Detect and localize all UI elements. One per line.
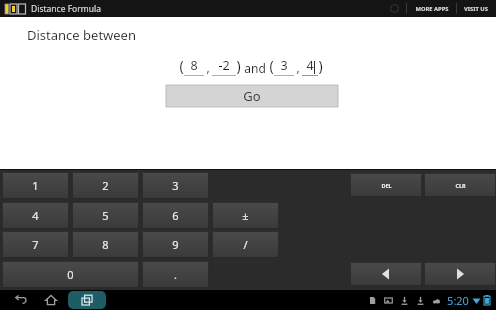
staticText: Distance Formula [31,3,101,15]
button[interactable]: 9 [142,231,209,258]
staticText: 8 [102,237,109,252]
button[interactable]: VISIT US [462,5,490,13]
staticText: Go [243,87,261,105]
staticText: DEL [381,182,392,189]
staticText: 7 [32,237,39,252]
button[interactable]: Go [166,85,338,107]
staticText: 5 [102,208,109,223]
button[interactable]: DEL [350,173,422,197]
staticText: 2 [102,178,109,193]
button[interactable]: 4 [2,202,69,229]
staticText: ) [318,56,323,75]
staticText: -2 [218,57,230,74]
button[interactable]: MORE APPS [413,5,451,13]
staticText: 4 [32,208,39,223]
button[interactable]: Recent apps [68,291,106,309]
staticText: 9 [172,237,179,252]
staticText: 0 [67,267,74,282]
button[interactable]: Previous field [350,262,422,286]
staticText: 6 [172,208,179,223]
button[interactable]: 1 [2,172,69,199]
button[interactable]: 8 [72,231,139,258]
staticText: , [296,59,300,75]
button[interactable]: 6 [142,202,209,229]
button[interactable]: / [212,231,279,258]
button[interactable]: 3 [142,172,209,199]
staticText: / [243,237,248,252]
staticText: 3 [172,178,179,193]
button[interactable]: 8 [184,57,204,76]
button[interactable]: ± [212,202,279,229]
staticText: and [244,60,266,76]
button[interactable]: . [142,261,209,288]
staticText: 4 [306,57,314,74]
staticText: Distance between [27,26,136,44]
staticText: 5:20 [447,293,469,308]
staticText: ) [236,56,241,75]
staticText: 8 [190,57,198,74]
staticText: , [206,59,210,75]
button[interactable]: Back [10,290,32,310]
staticText: VISIT US [464,5,488,13]
staticText: ( [269,56,274,75]
staticText: ( [179,56,184,75]
button[interactable]: Next field [424,262,496,286]
button[interactable]: 0 [2,261,139,288]
staticText: 3 [280,57,288,74]
button[interactable]: -2 [212,57,236,76]
button[interactable]: 5 [72,202,139,229]
staticText: 1 [32,178,39,193]
button[interactable]: 7 [2,231,69,258]
button[interactable]: 4 [302,57,318,76]
button[interactable]: CLR [424,173,496,197]
staticText: . [174,267,177,282]
staticText: ± [242,208,249,223]
button[interactable]: 2 [72,172,139,199]
staticText: MORE APPS [415,5,449,13]
staticText: CLR [455,182,466,189]
button[interactable]: Info [390,4,399,13]
button[interactable]: Home [40,290,62,310]
button[interactable]: 3 [274,57,294,76]
